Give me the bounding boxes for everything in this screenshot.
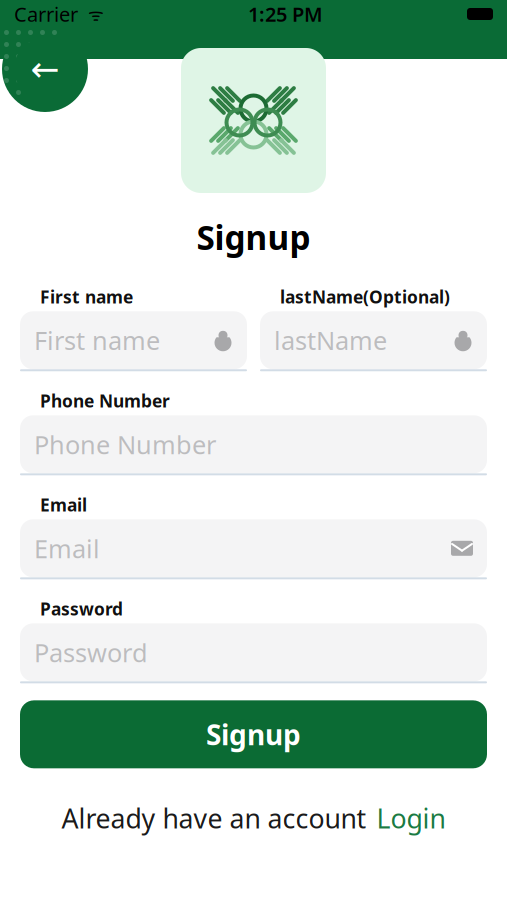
button[interactable]: lastName <box>260 311 487 371</box>
button[interactable]: Password <box>20 623 487 683</box>
staticText: Email <box>40 493 87 516</box>
staticText: Email <box>34 531 100 565</box>
staticText: lastName <box>274 323 387 357</box>
staticText: 1:25 PM <box>248 1 323 27</box>
button[interactable]: Back <box>14 38 76 100</box>
button[interactable]: Already have an account <box>61 800 445 836</box>
staticText: Signup <box>206 716 301 753</box>
button[interactable]: Signup <box>20 700 487 768</box>
staticText: Password <box>34 635 148 669</box>
staticText: Password <box>40 597 123 620</box>
staticText: Login <box>376 800 445 836</box>
button[interactable]: Email <box>20 519 487 579</box>
button[interactable]: Phone Number <box>20 415 487 475</box>
staticText: Phone Number <box>40 389 170 412</box>
staticText: First name <box>40 285 133 308</box>
button[interactable]: First name <box>20 311 247 371</box>
staticText: Signup <box>196 215 310 259</box>
staticText: Carrier <box>14 1 78 27</box>
staticText: ᯤ <box>78 2 104 25</box>
staticText: First name <box>34 323 160 357</box>
staticText: lastName(Optional) <box>280 285 450 308</box>
staticText: Phone Number <box>34 427 216 461</box>
staticText: ← <box>30 49 59 89</box>
staticText: Already have an account <box>61 800 366 836</box>
